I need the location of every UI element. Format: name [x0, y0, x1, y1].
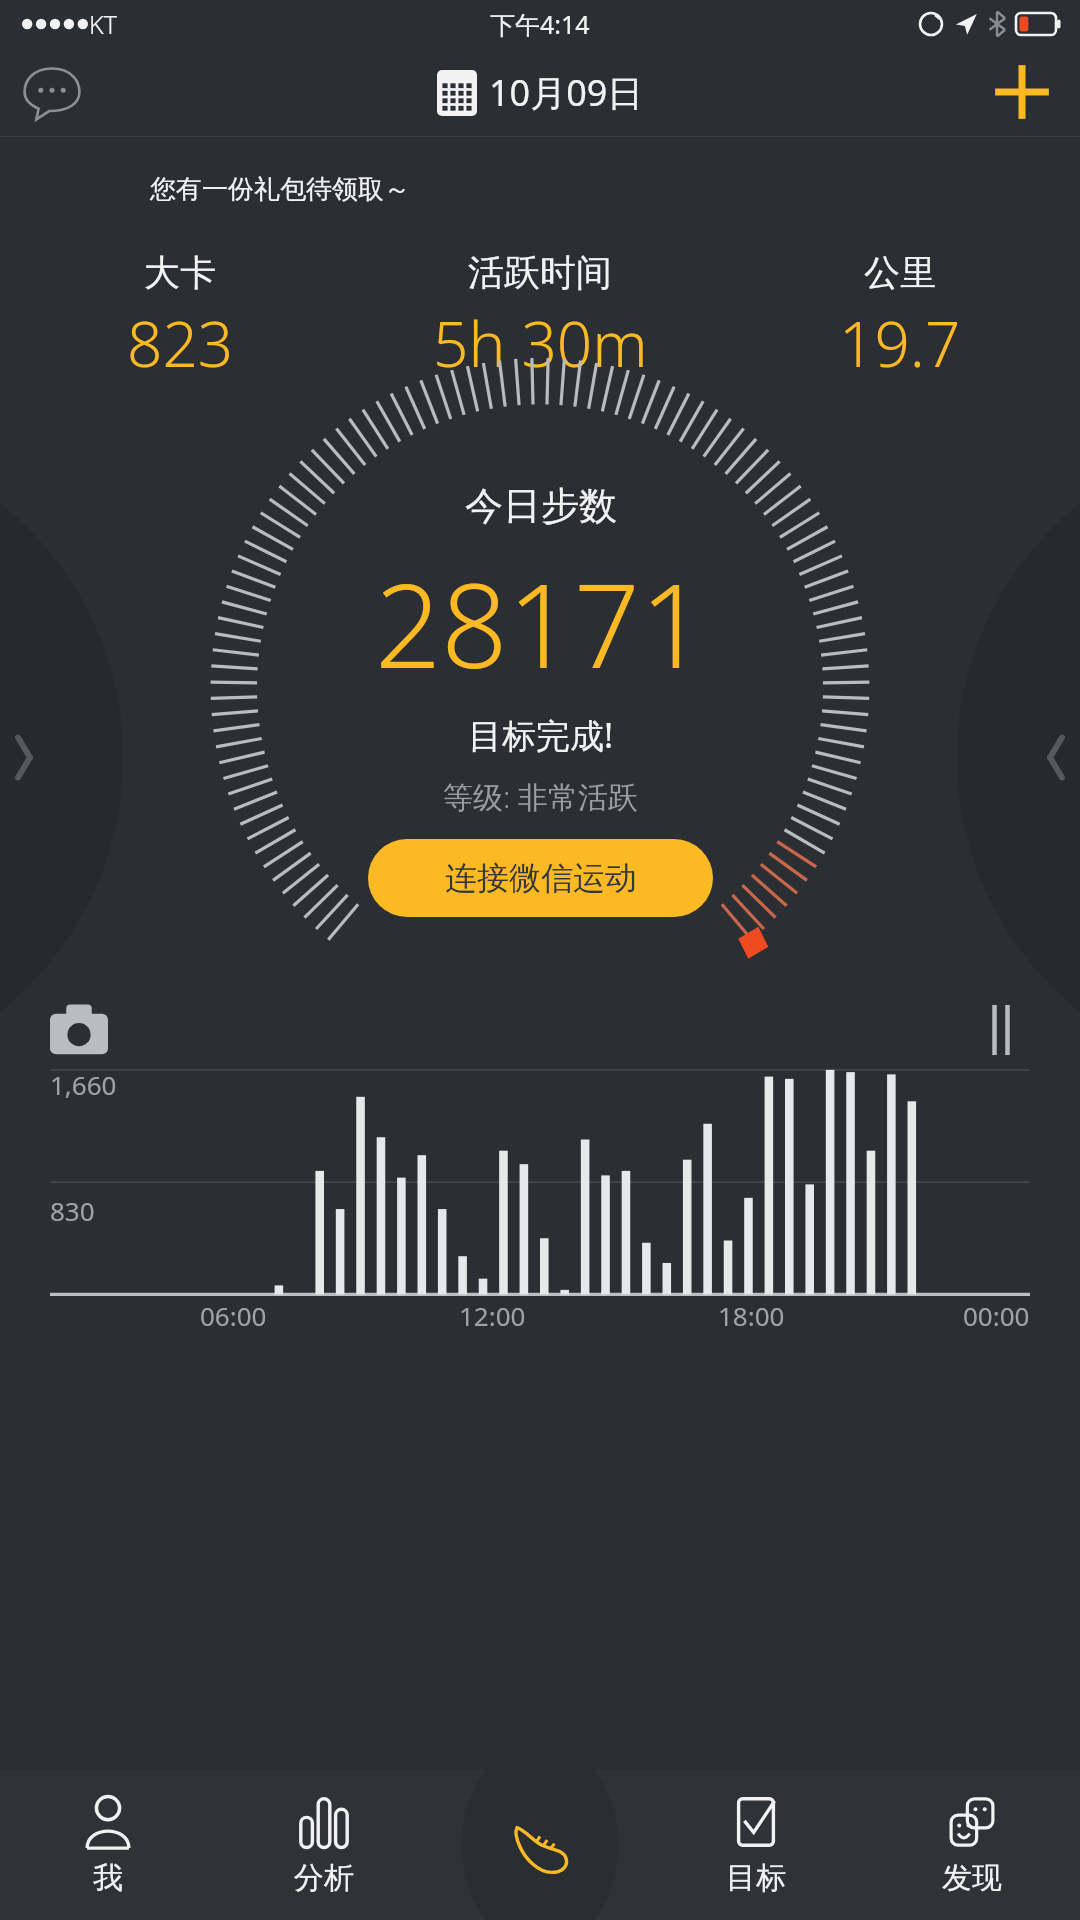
staticText: 活跃时间 [468, 250, 612, 295]
button[interactable]: 10月09日 [437, 68, 644, 117]
button[interactable]: 目标 [648, 1770, 864, 1920]
staticText: 目标完成! [468, 712, 614, 758]
staticText: 公里 [864, 250, 936, 295]
staticText: 我 [93, 1859, 123, 1897]
staticText: 连接微信运动 [445, 858, 637, 898]
staticText: 830 [50, 1193, 95, 1228]
staticText: 00:00 [963, 1298, 1030, 1333]
staticText: KT [89, 7, 117, 41]
staticText: 目标 [726, 1859, 786, 1897]
staticText: 28171 [375, 544, 707, 702]
button[interactable]: 活跃时间 [360, 250, 720, 385]
staticText: 今日步数 [465, 482, 617, 530]
button[interactable]: 分析 [216, 1770, 432, 1920]
staticText: 06:00 [200, 1298, 267, 1333]
button[interactable]: Add [990, 60, 1054, 124]
button[interactable]: 大卡 [0, 250, 360, 385]
button[interactable]: Pause [966, 995, 1036, 1065]
staticText: 10月09日 [489, 68, 644, 117]
button[interactable]: Steps [432, 1770, 648, 1920]
staticText: 分析 [294, 1859, 354, 1897]
button[interactable]: Messages [18, 58, 86, 126]
staticText: 大卡 [144, 250, 216, 295]
staticText: 发现 [942, 1859, 1002, 1897]
button[interactable]: 连接微信运动 [368, 839, 713, 917]
button[interactable]: 公里 [720, 250, 1080, 385]
staticText: 18:00 [718, 1298, 785, 1333]
staticText: 823 [127, 301, 234, 385]
button[interactable]: Camera [44, 995, 114, 1065]
staticText: 1,660 [50, 1067, 117, 1102]
button[interactable]: 发现 [864, 1770, 1080, 1920]
staticText: 等级: 非常活跃 [443, 776, 639, 817]
staticText: 您有一份礼包待领取～ [150, 173, 410, 206]
staticText: 下午4:14 [490, 7, 590, 41]
button[interactable]: 我 [0, 1770, 216, 1920]
staticText: 5h 30m [433, 301, 648, 385]
staticText: 12:00 [459, 1298, 526, 1333]
staticText: 19.7 [839, 301, 961, 385]
